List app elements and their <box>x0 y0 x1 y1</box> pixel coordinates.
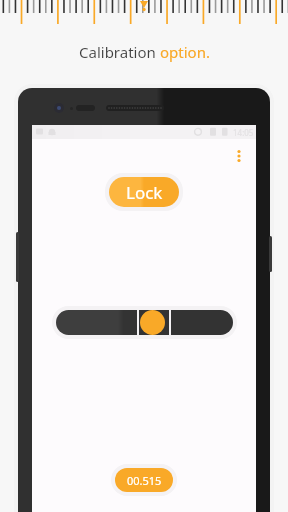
button[interactable]: Slider thumb <box>140 310 165 335</box>
button[interactable]: Lock <box>109 177 179 207</box>
staticText: Calibration <box>79 42 160 62</box>
staticText: 00.515 <box>127 473 162 488</box>
button[interactable]: 00.515 <box>115 468 173 492</box>
button[interactable]: More options <box>228 145 250 167</box>
staticText: option. <box>160 42 210 62</box>
staticText: Lock <box>126 181 163 204</box>
button[interactable]: Calibration slider <box>56 310 233 335</box>
staticText: 14:05 <box>233 127 254 138</box>
